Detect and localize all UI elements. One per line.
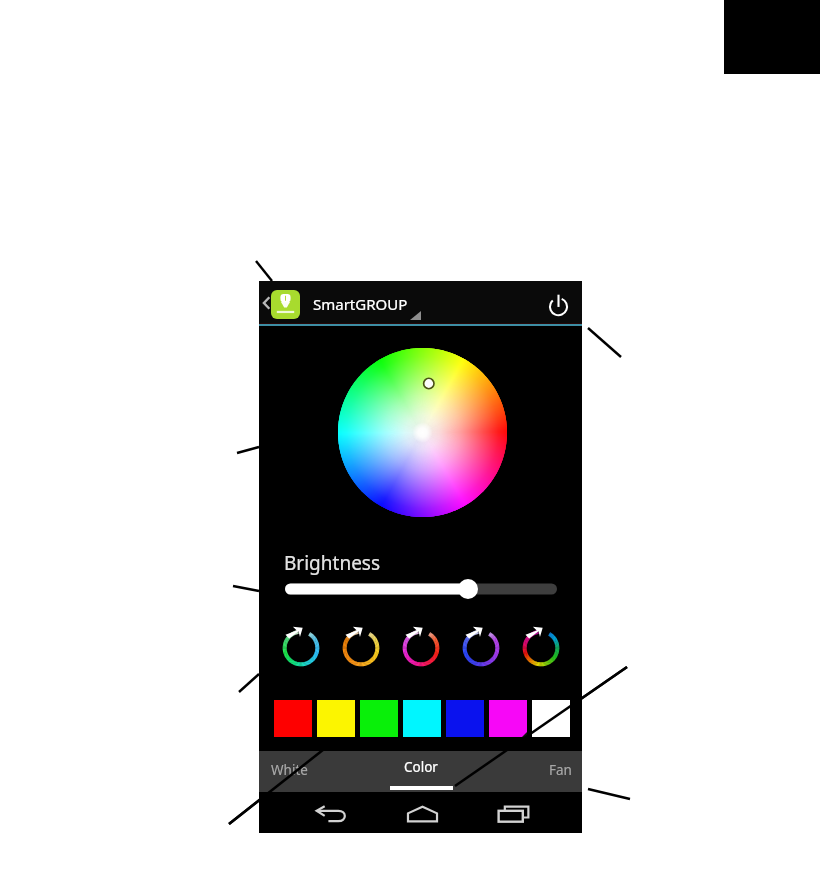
button[interactable]: Preset 3 <box>397 624 445 672</box>
button[interactable]: Colour 7 <box>532 700 570 737</box>
button[interactable]: Colour 6 <box>489 700 527 737</box>
button[interactable]: Recents <box>491 800 535 828</box>
button[interactable]: White <box>259 751 366 792</box>
button[interactable]: Back <box>309 800 353 828</box>
staticText: Fan <box>549 761 572 779</box>
button[interactable]: Brightness slider <box>285 580 557 598</box>
button[interactable]: Color <box>367 751 475 792</box>
staticText: SmartGROUP <box>313 294 408 314</box>
button[interactable]: Back <box>260 292 273 314</box>
button[interactable]: Power <box>539 286 577 324</box>
staticText: Color <box>404 758 438 776</box>
button[interactable]: Preset 2 <box>337 624 385 672</box>
button[interactable]: Fan <box>475 751 582 792</box>
button[interactable]: Preset 4 <box>457 624 505 672</box>
button[interactable]: Preset 5 <box>517 624 565 672</box>
button[interactable]: App icon <box>271 290 300 319</box>
staticText: White <box>271 761 308 779</box>
staticText: Brightness <box>284 550 381 576</box>
button[interactable]: Home <box>400 800 444 828</box>
button[interactable]: Preset 1 <box>277 624 325 672</box>
